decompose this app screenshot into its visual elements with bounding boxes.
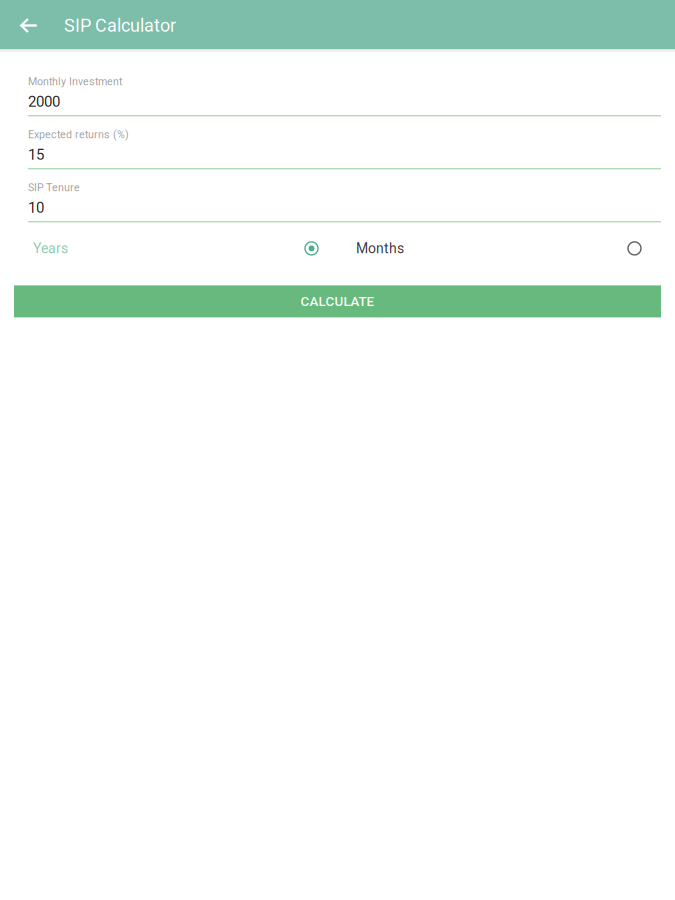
button[interactable]: Years [28,230,345,266]
button[interactable]: Months [345,230,661,266]
staticText: Expected returns (%) [28,128,129,141]
staticText: Months [356,240,404,257]
button[interactable]: Expected returns (%) [28,129,661,169]
staticText: SIP Tenure [28,181,80,194]
staticText: CALCULATE [300,294,374,309]
staticText: 15 [28,146,44,163]
staticText: Years [33,240,68,257]
staticText: Monthly Investment [28,75,122,88]
staticText: SIP Calculator [64,15,176,36]
staticText: 2000 [28,93,60,110]
button[interactable]: Back [5,0,53,49]
staticText: 10 [28,199,44,216]
button[interactable]: SIP Tenure [28,182,661,222]
button[interactable]: CALCULATE [14,285,661,317]
button[interactable]: Monthly Investment [28,76,661,116]
